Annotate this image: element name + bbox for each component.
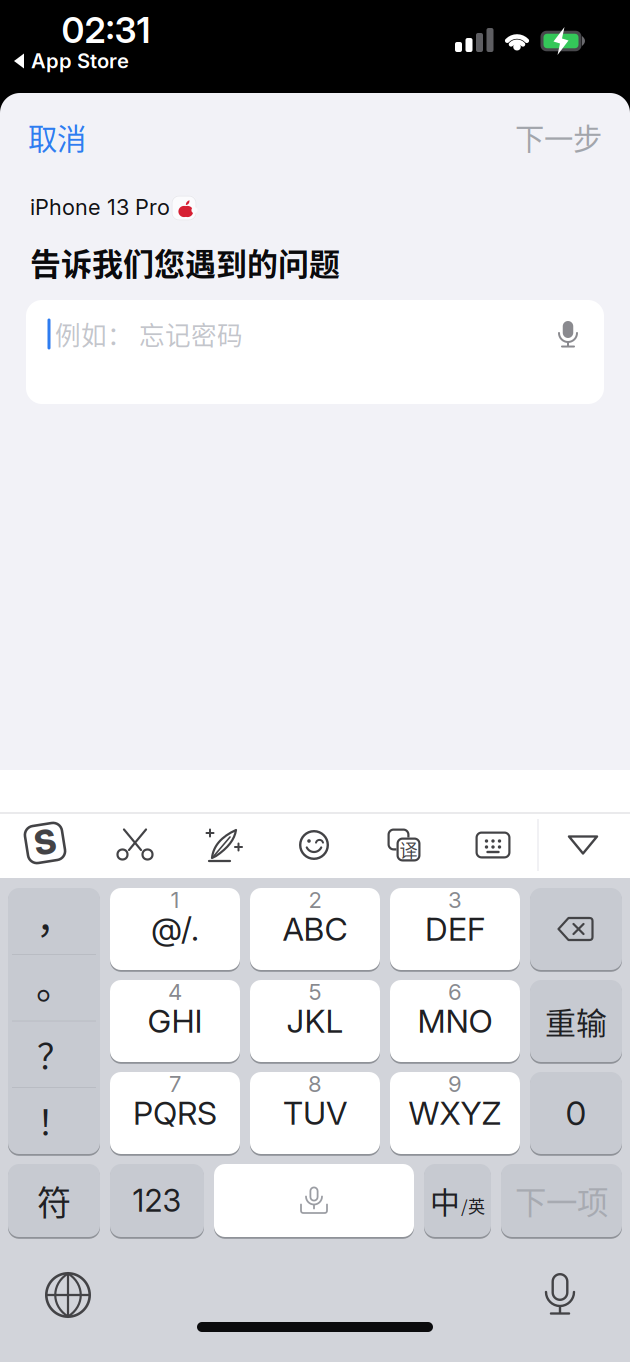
staticText: 1 (170, 887, 179, 913)
staticText: 3 (448, 887, 462, 913)
button[interactable] (45, 1272, 91, 1318)
staticText: 0 (565, 1093, 586, 1133)
staticText: /英 (461, 1193, 485, 1218)
button[interactable] (206, 828, 242, 862)
staticText: 02:31 (61, 8, 150, 51)
button[interactable]: 3 (390, 888, 520, 970)
button[interactable]: 译 (387, 828, 420, 861)
staticText: ？ (37, 1029, 71, 1079)
staticText: 。 (36, 954, 74, 1010)
staticText: 译 (399, 836, 417, 863)
staticText: JKL (286, 1002, 343, 1040)
button[interactable] (117, 829, 153, 860)
button[interactable]: 下一步 (515, 116, 602, 158)
button[interactable]: 1 (110, 888, 240, 970)
staticText: TUV (283, 1094, 347, 1132)
staticText: 中 (430, 1179, 460, 1222)
staticText: 重输 (545, 999, 607, 1043)
staticText: 2 (308, 887, 321, 913)
button[interactable]: 123 (110, 1164, 204, 1237)
button[interactable] (555, 321, 581, 351)
staticText: 123 (132, 1182, 181, 1219)
button[interactable]: 6 (390, 980, 520, 1062)
staticText: 5 (308, 979, 321, 1005)
button[interactable]: App Store (14, 49, 129, 73)
button[interactable] (568, 835, 598, 854)
staticText: PQRS (133, 1094, 217, 1132)
staticText: DEF (425, 910, 485, 948)
button[interactable] (299, 830, 329, 860)
button[interactable]: 下一项 (501, 1164, 622, 1237)
button[interactable] (475, 831, 510, 858)
button[interactable]: 7 (110, 1072, 240, 1154)
staticText: 7 (169, 1071, 181, 1097)
button[interactable] (530, 888, 622, 970)
button[interactable]: 9 (390, 1072, 520, 1154)
staticText: S (34, 822, 56, 862)
button[interactable]: ， (8, 888, 100, 1154)
staticText: 6 (448, 979, 462, 1005)
button[interactable]: 8 (250, 1072, 380, 1154)
staticText: ， (36, 888, 74, 944)
staticText: 8 (308, 1071, 322, 1097)
button[interactable]: 重输 (530, 980, 622, 1062)
staticText: App Store (31, 49, 129, 73)
staticText: 下一步 (515, 116, 602, 158)
button[interactable]: 4 (110, 980, 240, 1062)
staticText: 9 (448, 1071, 462, 1097)
staticText: @/. (151, 910, 199, 948)
button[interactable]: 中 (424, 1164, 491, 1237)
button[interactable]: 取消 (28, 116, 86, 158)
button[interactable]: 5 (250, 980, 380, 1062)
staticText: ABC (282, 910, 347, 948)
staticText: 符 (37, 1176, 71, 1225)
staticText: MNO (417, 1002, 492, 1040)
staticText: 取消 (28, 116, 86, 158)
staticText: 告诉我们您遇到的问题 (30, 240, 340, 284)
staticText: WXYZ (408, 1094, 501, 1132)
button[interactable]: 符 (8, 1164, 100, 1237)
staticText: iPhone 13 Pro (30, 194, 170, 220)
button[interactable]: S (25, 823, 65, 863)
staticText: GHI (147, 1002, 202, 1040)
staticText: 例如： 忘记密码 (55, 315, 243, 353)
button[interactable] (214, 1164, 414, 1237)
staticText: 4 (168, 979, 182, 1005)
staticText: ！ (37, 1095, 71, 1145)
button[interactable] (541, 1273, 579, 1315)
button[interactable]: 2 (250, 888, 380, 970)
staticText: 下一项 (515, 1178, 608, 1223)
button[interactable]: 0 (530, 1072, 622, 1154)
